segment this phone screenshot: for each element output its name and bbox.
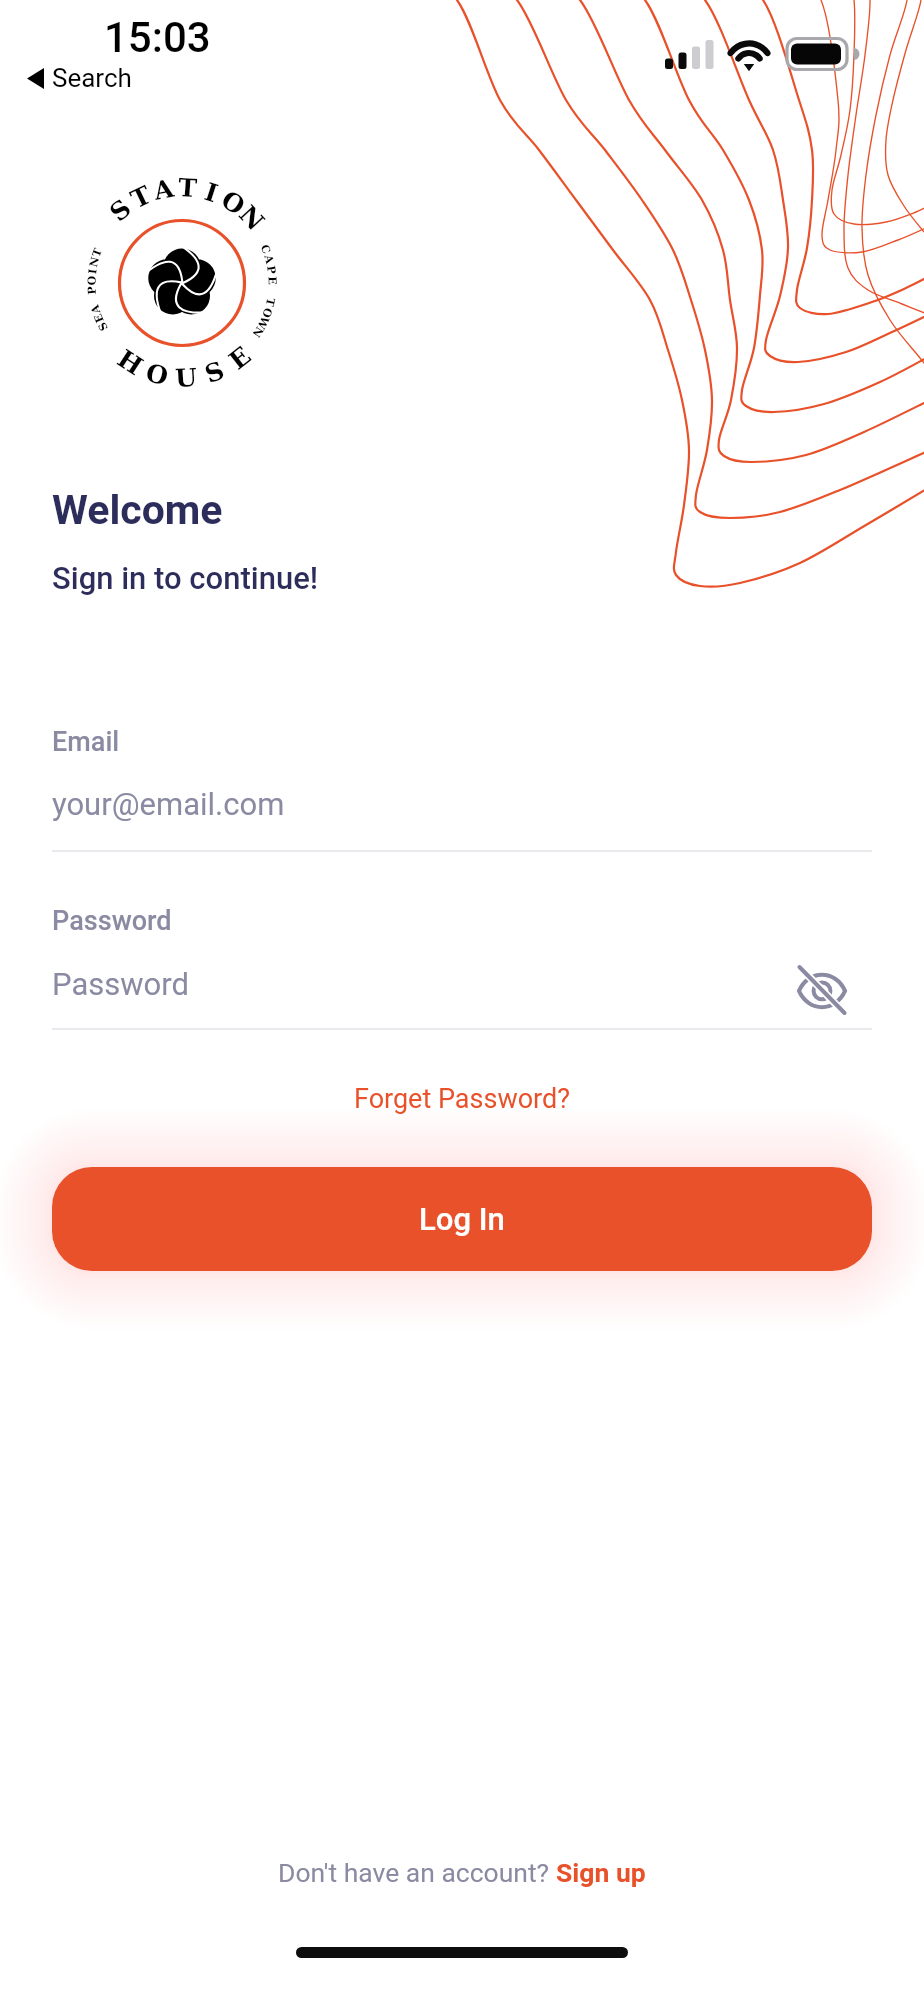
staticText: Sign up	[556, 1857, 646, 1888]
staticText: Search	[52, 63, 132, 93]
staticText: Log In	[419, 1201, 505, 1237]
button[interactable]: Log In	[52, 1167, 872, 1271]
staticText: Password	[52, 966, 189, 1002]
staticText: Sign in to continue!	[52, 560, 319, 596]
staticText: 15:03	[104, 13, 211, 62]
staticText: Forget Password?	[354, 1083, 570, 1115]
button[interactable]: Forget Password?	[342, 1077, 582, 1121]
staticText: Email	[52, 726, 120, 758]
staticText: Welcome	[52, 486, 223, 534]
staticText: Password	[52, 905, 172, 937]
button[interactable]: Sign up	[556, 1857, 646, 1888]
button[interactable]: Show password	[790, 958, 854, 1022]
staticText: Don't have an account?	[278, 1857, 556, 1888]
staticText: your@email.com	[52, 786, 285, 822]
